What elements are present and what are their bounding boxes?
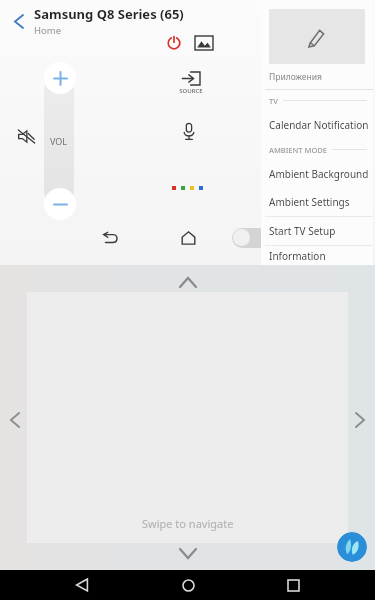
button[interactable]: Assistant [337, 532, 367, 562]
button[interactable]: Start TV Setup [261, 217, 373, 245]
button[interactable]: Collapse [168, 542, 208, 564]
staticText: VOL [50, 135, 68, 147]
button[interactable]: Expand [168, 271, 208, 293]
staticText: SOURCE [179, 87, 203, 95]
staticText: TV [269, 96, 278, 106]
staticText: Start TV Setup [269, 224, 336, 238]
button[interactable]: Volume down [44, 188, 76, 220]
button[interactable]: Toggle [232, 228, 282, 248]
button[interactable]: Swipe to navigate [27, 292, 348, 543]
staticText: Samsung Q8 Series (65) [34, 5, 184, 23]
button[interactable]: Back [96, 224, 124, 252]
button[interactable]: Information [261, 246, 373, 265]
button[interactable]: Color buttons [172, 180, 208, 196]
button[interactable]: Ambient Settings [261, 188, 373, 216]
staticText: Ambient Background [269, 167, 369, 181]
button[interactable]: Приложения [261, 0, 373, 89]
button[interactable]: Picture [192, 31, 216, 55]
staticText: Swipe to navigate [142, 516, 234, 531]
button[interactable]: Back [6, 8, 32, 34]
staticText: AMBIENT MODE [269, 145, 327, 155]
button[interactable]: Volume up [44, 62, 76, 94]
button[interactable]: Calendar Notification [261, 111, 373, 139]
button[interactable]: Ambient Background [261, 160, 373, 188]
button[interactable]: Power [162, 31, 186, 55]
button[interactable]: Source [174, 72, 208, 95]
button[interactable]: Home [174, 224, 202, 252]
button[interactable]: Voice [176, 118, 202, 144]
staticText: Home [34, 24, 62, 37]
staticText: Приложения [269, 71, 322, 83]
staticText: Ambient Settings [269, 195, 350, 209]
staticText: 123 [263, 233, 276, 243]
button[interactable]: Back [58, 570, 106, 600]
button[interactable]: Home [164, 570, 212, 600]
button[interactable]: Recents [269, 570, 317, 600]
button[interactable]: Mute [12, 122, 40, 150]
button[interactable]: Right [349, 405, 371, 435]
button[interactable]: Left [4, 405, 26, 435]
staticText: Calendar Notification [269, 118, 369, 132]
staticText: Information [269, 249, 326, 263]
